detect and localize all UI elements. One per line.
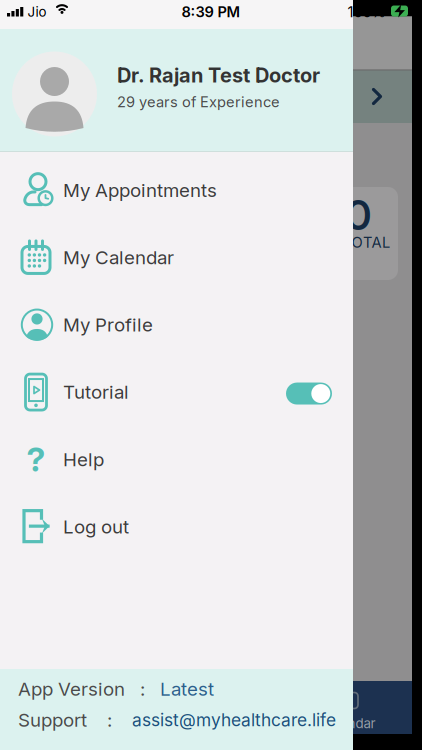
staticText: Dr. Rajan Test Doctor xyxy=(117,64,320,87)
staticText: assist@myhealthcare.life xyxy=(132,710,336,730)
button[interactable]: My Profile xyxy=(0,291,353,358)
staticText: TOTAL xyxy=(342,234,390,251)
staticText: Help xyxy=(63,448,104,470)
button[interactable]: My Calendar xyxy=(0,224,353,291)
staticText: Latest xyxy=(160,678,214,700)
button[interactable]: My Appointments xyxy=(0,156,353,224)
staticText: Tutorial xyxy=(63,381,129,403)
button[interactable]: ? xyxy=(0,426,353,493)
button[interactable]: Log out xyxy=(0,493,353,560)
staticText: Log out xyxy=(63,516,129,538)
staticText: ? xyxy=(26,440,45,479)
staticText: 0 xyxy=(345,191,371,239)
staticText: 100% xyxy=(347,3,385,21)
staticText: 29 years of Experience xyxy=(117,93,280,110)
button[interactable]: Latest xyxy=(160,678,214,700)
staticText: : xyxy=(87,709,132,731)
button[interactable]: Dr. Rajan Test Doctor xyxy=(0,29,353,151)
staticText: My Appointments xyxy=(63,179,217,201)
staticText: : xyxy=(125,678,160,700)
staticText: Jio xyxy=(27,4,46,20)
staticText: Calendar xyxy=(319,716,375,731)
staticText: App Version xyxy=(18,678,125,700)
staticText: My Calendar xyxy=(63,246,174,268)
button[interactable]: Tutorial xyxy=(286,382,332,404)
button[interactable]: assist@myhealthcare.life xyxy=(132,710,336,730)
staticText: Support xyxy=(18,709,87,731)
staticText: 8:39 PM xyxy=(181,3,240,21)
staticText: My Profile xyxy=(63,314,153,336)
